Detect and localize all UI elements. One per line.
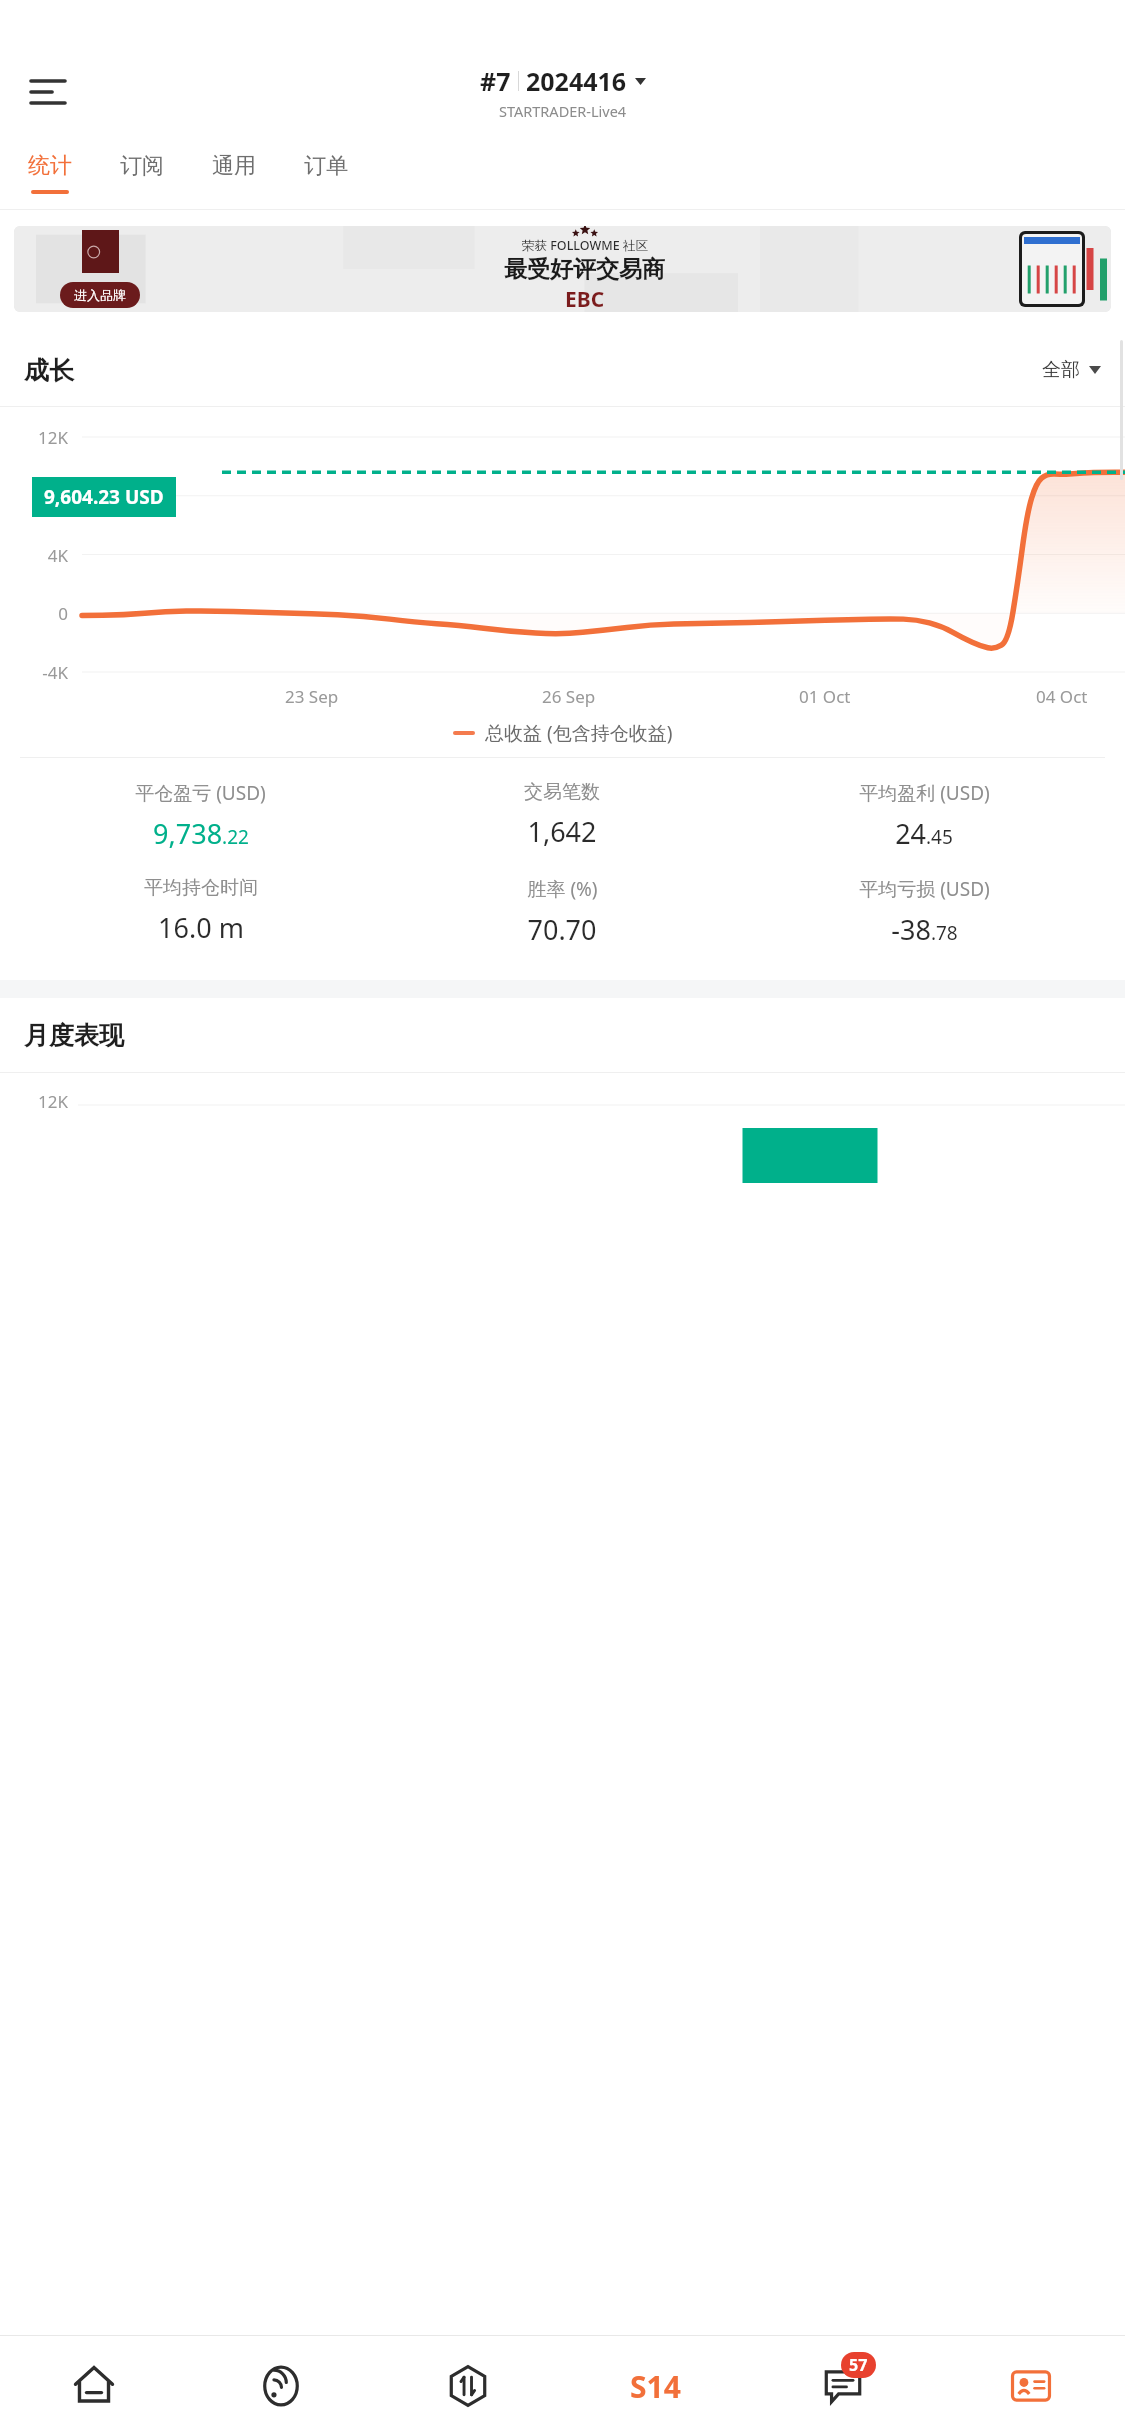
staticText: 最受好评交易商 [504, 255, 665, 284]
staticText: 交易笔数 [524, 780, 600, 804]
staticText: 全部 [1042, 358, 1080, 382]
staticText: 26 Sep [542, 685, 596, 708]
staticText: -4K [8, 661, 68, 684]
button[interactable]: 订阅 [116, 152, 168, 194]
button[interactable]: 通用 [208, 152, 260, 194]
staticText: 1,642 [527, 813, 597, 850]
button[interactable]: S14 [561, 2336, 749, 2436]
button[interactable]: 统计 [24, 152, 76, 194]
staticText: 统计 [28, 152, 72, 180]
staticText: 70.70 [527, 911, 597, 948]
staticText: 57 [849, 2354, 868, 2376]
staticText: 0 [8, 602, 68, 625]
button[interactable]: 交易笔数 [381, 780, 743, 850]
staticText: 12K [10, 1090, 68, 1113]
staticText: 进入品牌 [74, 287, 126, 303]
button[interactable]: 订单 [300, 152, 352, 194]
button[interactable]: 全部 [1042, 358, 1101, 382]
button[interactable]: 平仓盈亏 (USD) [20, 780, 381, 852]
staticText: 8K [8, 485, 68, 508]
staticText: S14 [630, 2366, 681, 2407]
staticText: 平均亏损 (USD) [859, 876, 990, 902]
staticText: 平均盈利 (USD) [859, 780, 990, 806]
staticText: 平仓盈亏 (USD) [135, 780, 266, 806]
staticText: 23 Sep [285, 685, 339, 708]
button[interactable]: 进入品牌 [74, 287, 126, 303]
staticText: STARTRADER-Live4 [499, 101, 627, 121]
button[interactable]: 平均盈利 (USD) [743, 780, 1105, 852]
staticText: 订单 [304, 152, 348, 180]
staticText: 12K [8, 426, 68, 449]
staticText: 胜率 (%) [527, 876, 598, 902]
button[interactable]: Menu [18, 62, 78, 122]
staticText: 16.0 m [158, 909, 244, 946]
button[interactable]: 进入品牌 [14, 226, 1111, 312]
staticText: 9,604.23 USD [44, 484, 164, 510]
staticText: -38.78 [891, 911, 958, 948]
staticText: #7 [480, 64, 511, 98]
staticText: 4K [8, 544, 68, 567]
staticText: 平均持仓时间 [144, 876, 258, 900]
staticText: 总收益 (包含持仓收益) [485, 720, 673, 746]
staticText: EBC [565, 285, 605, 312]
button[interactable]: Home [0, 2336, 187, 2436]
staticText: 01 Oct [799, 685, 851, 708]
staticText: 订阅 [120, 152, 164, 180]
button[interactable]: Profile [937, 2336, 1125, 2436]
staticText: 月度表现 [24, 1020, 124, 1051]
staticText: 9,738.22 [153, 815, 249, 852]
staticText: 2024416 [526, 64, 627, 98]
button[interactable]: 平均持仓时间 [20, 876, 381, 946]
staticText: 04 Oct [1036, 685, 1088, 708]
staticText: 荣获 FOLLOWME 社区 [522, 237, 648, 254]
staticText: 通用 [212, 152, 256, 180]
staticText: 24.45 [895, 815, 953, 852]
button[interactable]: Messages, 57 unread [749, 2336, 937, 2436]
button[interactable]: Feed [187, 2336, 374, 2436]
button[interactable]: 胜率 (%) [381, 876, 743, 948]
button[interactable]: Trade [374, 2336, 561, 2436]
staticText: 成长 [24, 355, 74, 386]
button[interactable]: 平均亏损 (USD) [743, 876, 1105, 948]
